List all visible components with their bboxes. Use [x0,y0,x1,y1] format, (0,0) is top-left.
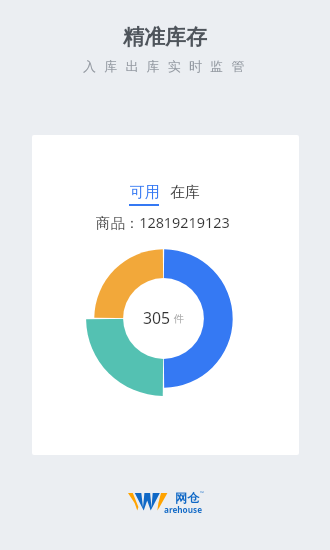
staticText: 入库出库实时监管 [83,58,253,74]
button[interactable]: 在库 [162,175,208,214]
button[interactable]: 网仓 Warehouse [127,490,207,514]
staticText: arehouse [164,504,203,515]
staticText: 在库 [170,183,200,202]
staticText: ™ [200,490,204,497]
staticText: 网仓 [175,490,199,505]
staticText: 精准库存 [123,24,207,50]
staticText: 件 [174,312,184,325]
staticText: 商品：12819219123 [96,213,230,233]
staticText: 可用 [130,183,160,202]
staticText: 305 [143,307,171,329]
button[interactable]: 可用 [122,175,168,214]
